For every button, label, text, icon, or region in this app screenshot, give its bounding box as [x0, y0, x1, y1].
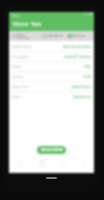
staticText: android* android: [64, 54, 91, 58]
button[interactable]: Back: [12, 13, 20, 18]
staticText: Nama Test: [12, 84, 29, 88]
staticText: Jumlah: [12, 74, 23, 78]
button[interactable]: Ubah Motor: [42, 31, 68, 41]
staticText: Motor Test: [13, 20, 42, 28]
staticText: FiNL: [84, 64, 91, 68]
staticText: Daftar Motor: [12, 44, 33, 48]
staticText: Jadwal Tipus: [71, 84, 91, 88]
button[interactable]: Motor Sekarang: [12, 31, 42, 41]
staticText: MULAI MOTOR: [41, 148, 63, 152]
button[interactable]: Home: [9, 157, 31, 170]
staticText: Biaya: [12, 94, 21, 98]
staticText: Dipalbursat: [72, 94, 91, 98]
staticText: Motor: [38, 164, 46, 167]
staticText: 13.00: [82, 74, 91, 78]
button[interactable]: Model: [9, 61, 94, 71]
button[interactable]: Motor: [31, 157, 52, 170]
staticText: Bandung: [73, 34, 86, 38]
button[interactable]: Bandung: [68, 31, 93, 41]
staticText: Ubah Motor: [47, 34, 63, 38]
staticText: Motor Sekarang: [17, 33, 30, 40]
staticText: Back: [12, 13, 20, 18]
button[interactable]: Profil: [73, 157, 94, 170]
button[interactable]: Nama Test: [9, 81, 94, 91]
button[interactable]: Daftar Motor: [9, 41, 94, 51]
staticText: Model: [12, 64, 22, 68]
button[interactable]: MULAI MOTOR: [37, 146, 66, 154]
staticText: Perangkat: [12, 54, 28, 58]
button[interactable]: Biaya: [9, 91, 94, 101]
button[interactable]: Perangkat: [9, 51, 94, 61]
staticText: Work Arrival Valve: [62, 44, 91, 48]
button[interactable]: Jumlah: [9, 71, 94, 81]
